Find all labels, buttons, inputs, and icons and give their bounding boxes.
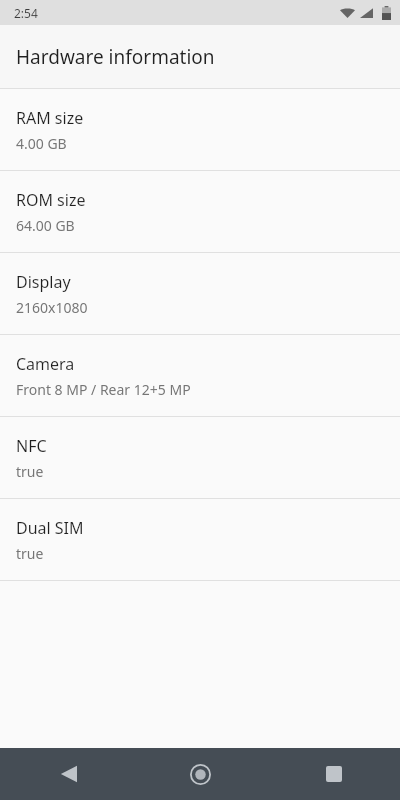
staticText: Display: [16, 271, 71, 293]
staticText: 2160x1080: [16, 298, 88, 317]
staticText: true: [16, 544, 44, 563]
staticText: Front 8 MP / Rear 12+5 MP: [16, 380, 191, 399]
staticText: 2:54: [14, 5, 38, 21]
staticText: true: [16, 462, 44, 481]
button[interactable]: Back: [0, 748, 134, 800]
staticText: 64.00 GB: [16, 216, 75, 235]
button[interactable]: RAM size: [0, 89, 400, 170]
staticText: RAM size: [16, 107, 84, 129]
staticText: NFC: [16, 435, 47, 457]
button[interactable]: Camera: [0, 335, 400, 416]
staticText: ROM size: [16, 189, 86, 211]
button[interactable]: Display: [0, 253, 400, 334]
staticText: Camera: [16, 353, 75, 375]
button[interactable]: NFC: [0, 417, 400, 498]
button[interactable]: Dual SIM: [0, 499, 400, 580]
button[interactable]: ROM size: [0, 171, 400, 252]
staticText: Hardware information: [16, 44, 215, 70]
staticText: Dual SIM: [16, 517, 84, 539]
button[interactable]: Home: [134, 748, 267, 800]
button[interactable]: Recent apps: [267, 748, 400, 800]
staticText: 4.00 GB: [16, 134, 67, 153]
